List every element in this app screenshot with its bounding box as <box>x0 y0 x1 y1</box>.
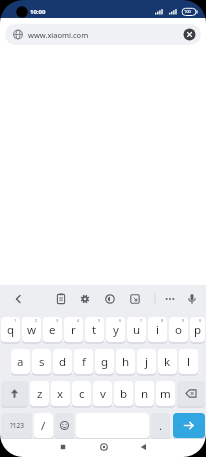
button[interactable]: r <box>64 317 83 342</box>
staticText: 2 <box>35 318 38 323</box>
button[interactable]: a <box>11 349 30 374</box>
staticText: x <box>57 386 64 402</box>
button[interactable] <box>100 289 120 309</box>
button[interactable]: p <box>190 317 205 342</box>
staticText: o <box>175 322 182 338</box>
button[interactable]: d <box>53 349 72 374</box>
button[interactable] <box>96 440 112 456</box>
button[interactable]: n <box>135 381 154 406</box>
button[interactable]: g <box>95 349 114 374</box>
staticText: p <box>194 322 202 338</box>
button[interactable]: e <box>43 317 62 342</box>
button[interactable] <box>160 289 180 309</box>
button[interactable] <box>55 413 74 438</box>
staticText: 4 <box>77 318 80 323</box>
staticText: q <box>7 322 15 338</box>
staticText: s <box>39 354 45 370</box>
staticText: r <box>71 322 76 338</box>
button[interactable] <box>136 440 152 456</box>
staticText: d <box>59 354 67 370</box>
staticText: 5 <box>98 318 101 323</box>
staticText: m <box>160 386 171 402</box>
staticText: 0 <box>199 318 202 323</box>
staticText: b <box>120 386 128 402</box>
staticText: 8 <box>161 318 164 323</box>
button[interactable]: f <box>74 349 93 374</box>
staticText: k <box>164 354 171 370</box>
staticText: 1 <box>14 318 17 323</box>
button[interactable]: ?123 <box>1 413 32 438</box>
staticText: e <box>49 322 56 338</box>
staticText: n <box>141 386 149 402</box>
button[interactable] <box>125 289 145 309</box>
staticText: f <box>82 354 86 370</box>
button[interactable]: z <box>30 381 49 406</box>
button[interactable]: m <box>156 381 175 406</box>
staticText: 6 <box>119 318 122 323</box>
button[interactable]: / <box>34 413 53 438</box>
staticText: l <box>187 354 190 370</box>
staticText: 9 <box>182 318 185 323</box>
button[interactable] <box>182 289 202 309</box>
staticText: 3 <box>56 318 59 323</box>
button[interactable]: u <box>127 317 146 342</box>
button[interactable]: v <box>93 381 112 406</box>
staticText: u <box>133 322 141 338</box>
staticText: a <box>17 354 24 370</box>
staticText: y <box>113 322 119 338</box>
button[interactable]: j <box>137 349 156 374</box>
button[interactable]: w <box>22 317 41 342</box>
staticText: ?123 <box>10 421 24 430</box>
staticText: . <box>159 418 163 434</box>
button[interactable]: q <box>1 317 20 342</box>
staticText: v <box>100 386 106 402</box>
staticText: / <box>41 418 46 434</box>
button[interactable] <box>177 381 205 406</box>
button[interactable]: c <box>72 381 91 406</box>
button[interactable] <box>8 289 28 309</box>
button[interactable]: www.xiaomi.com <box>5 24 201 45</box>
button[interactable] <box>173 413 205 438</box>
button[interactable] <box>75 289 95 309</box>
staticText: 100 <box>184 9 191 14</box>
button[interactable]: o <box>169 317 188 342</box>
button[interactable] <box>55 440 71 456</box>
button[interactable]: l <box>179 349 198 374</box>
staticText: t <box>92 322 97 338</box>
staticText: w <box>27 322 37 338</box>
button[interactable] <box>51 289 71 309</box>
staticText: i <box>156 322 159 338</box>
staticText: 10:00 <box>30 8 46 16</box>
button[interactable] <box>1 381 28 406</box>
button[interactable]: y <box>106 317 125 342</box>
button[interactable]: t <box>85 317 104 342</box>
staticText: c <box>79 386 85 402</box>
button[interactable]: b <box>114 381 133 406</box>
staticText: 7 <box>140 318 143 323</box>
staticText: g <box>101 354 109 370</box>
staticText: h <box>122 354 130 370</box>
button[interactable]: k <box>158 349 177 374</box>
button[interactable]: . <box>151 413 170 438</box>
staticText: z <box>37 386 43 402</box>
staticText: www.xiaomi.com <box>28 30 89 40</box>
staticText: j <box>145 354 148 370</box>
button[interactable]: x <box>51 381 70 406</box>
button[interactable]: s <box>32 349 51 374</box>
button[interactable]: h <box>116 349 135 374</box>
button[interactable]: i <box>148 317 167 342</box>
